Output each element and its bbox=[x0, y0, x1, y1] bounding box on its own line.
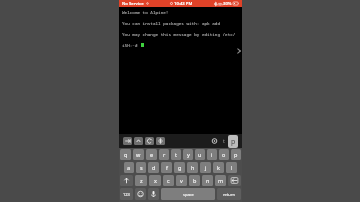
button[interactable]: c bbox=[163, 175, 174, 186]
staticText: j bbox=[205, 164, 207, 171]
staticText: 123 bbox=[123, 192, 130, 197]
staticText: b bbox=[193, 177, 197, 184]
staticText: c bbox=[167, 177, 170, 184]
button[interactable]: n bbox=[202, 175, 213, 186]
button[interactable]: t bbox=[171, 149, 181, 160]
button[interactable]: return bbox=[217, 188, 241, 200]
staticText: You may change this message by editing /… bbox=[122, 31, 242, 37]
staticText: g bbox=[178, 164, 182, 171]
button[interactable]: e bbox=[146, 149, 157, 160]
button[interactable]: p bbox=[231, 149, 241, 160]
button[interactable]: m bbox=[215, 175, 226, 186]
staticText: t bbox=[223, 138, 225, 145]
staticText: x bbox=[154, 177, 157, 184]
staticText: r bbox=[163, 151, 166, 158]
button[interactable]: Next bbox=[235, 47, 243, 55]
button[interactable]: x bbox=[149, 175, 161, 186]
button[interactable]: 123 bbox=[120, 188, 133, 200]
staticText: space bbox=[183, 192, 194, 197]
staticText: return bbox=[223, 192, 235, 197]
staticText: u bbox=[198, 151, 202, 158]
staticText: Welcome to Alpine! bbox=[122, 9, 169, 15]
button[interactable]: b bbox=[189, 175, 200, 186]
button[interactable]: Arrow keys bbox=[156, 137, 165, 145]
staticText: e bbox=[150, 151, 154, 158]
staticText: w bbox=[136, 151, 141, 158]
staticText: f bbox=[166, 164, 168, 171]
button[interactable]: d bbox=[148, 162, 159, 173]
staticText: o bbox=[222, 151, 226, 158]
staticText: n bbox=[206, 177, 210, 184]
staticText: h bbox=[191, 164, 195, 171]
staticText: l bbox=[231, 164, 233, 171]
button[interactable]: v bbox=[176, 175, 187, 186]
staticText: t bbox=[175, 151, 177, 158]
button[interactable]: Dictation bbox=[148, 188, 159, 200]
staticText: s bbox=[140, 164, 143, 171]
button[interactable]: a bbox=[124, 162, 134, 173]
staticText: d bbox=[152, 164, 156, 171]
staticText: iSH:~# bbox=[122, 42, 141, 48]
staticText: 10:43 PM bbox=[174, 1, 193, 7]
staticText: m bbox=[218, 177, 224, 184]
staticText: a bbox=[127, 164, 131, 171]
button[interactable]: Emoji bbox=[135, 188, 146, 200]
button[interactable]: q bbox=[120, 149, 131, 160]
button[interactable]: l bbox=[226, 162, 237, 173]
button[interactable]: Control bbox=[134, 137, 143, 145]
staticText: You can install packages with: apk add <… bbox=[122, 20, 242, 26]
button[interactable]: h bbox=[187, 162, 198, 173]
button[interactable]: p bbox=[227, 134, 238, 148]
staticText: No Service bbox=[122, 1, 144, 7]
staticText: q bbox=[124, 151, 128, 158]
button[interactable]: u bbox=[195, 149, 205, 160]
button[interactable]: i bbox=[207, 149, 217, 160]
button[interactable]: y bbox=[183, 149, 193, 160]
button[interactable]: j bbox=[200, 162, 211, 173]
button[interactable]: f bbox=[161, 162, 172, 173]
button[interactable]: Escape bbox=[145, 137, 154, 145]
button[interactable]: Shift bbox=[120, 175, 133, 186]
button[interactable]: k bbox=[213, 162, 224, 173]
button[interactable]: g bbox=[174, 162, 185, 173]
staticText: p bbox=[231, 137, 236, 147]
button[interactable]: o bbox=[219, 149, 229, 160]
button[interactable]: r bbox=[159, 149, 169, 160]
staticText: i bbox=[211, 151, 213, 158]
button[interactable]: w bbox=[133, 149, 144, 160]
staticText: z bbox=[140, 177, 143, 184]
staticText: v bbox=[180, 177, 183, 184]
button[interactable]: space bbox=[161, 188, 215, 200]
button[interactable]: z bbox=[135, 175, 147, 186]
staticText: 30% bbox=[223, 1, 232, 7]
button[interactable]: Copy bbox=[210, 137, 219, 145]
button[interactable]: s bbox=[136, 162, 146, 173]
button[interactable]: tab bbox=[123, 137, 132, 145]
staticText: p bbox=[234, 151, 238, 158]
button[interactable]: Backspace bbox=[228, 175, 241, 186]
staticText: k bbox=[217, 164, 220, 171]
staticText: y bbox=[187, 151, 190, 158]
